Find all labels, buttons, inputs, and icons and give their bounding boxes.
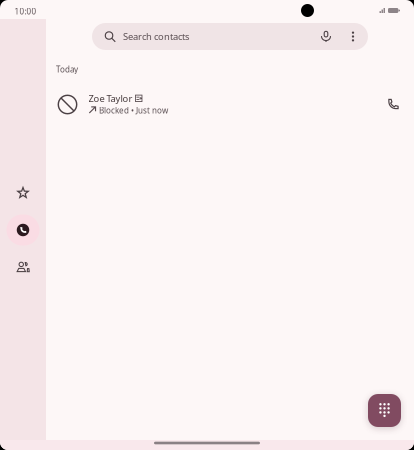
button[interactable]: Zoe Taylor [46,86,414,122]
button[interactable]: Favorites [3,179,43,207]
button[interactable]: Search contacts [92,23,368,50]
staticText: Search contacts [123,30,189,43]
staticText: Today [56,64,78,75]
button[interactable]: Recents [3,213,43,247]
staticText: Zoe Taylor [88,92,132,105]
button[interactable]: Contacts [3,253,43,281]
staticText: Blocked • Just now [99,105,168,116]
staticText: 10:00 [14,6,36,17]
button[interactable]: Dial pad [368,394,401,427]
